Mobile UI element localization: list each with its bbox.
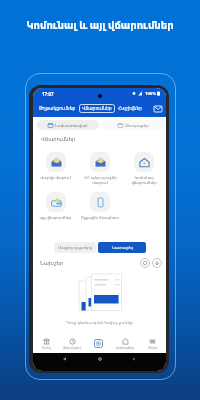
staticText: Ձևաթղթեր <box>125 123 149 128</box>
staticText: Հաշիվներ <box>118 106 143 111</box>
button[interactable]: Home <box>97 356 103 362</box>
staticText: Դուք դեռևս որևէ նախշ չունեք <box>66 320 133 326</box>
button[interactable]: ՀՀ պետ բյուջեի <box>78 152 122 185</box>
button[interactable]: Մենյու <box>139 334 166 353</box>
button[interactable]: Ձևաթղթեր <box>102 120 164 130</box>
button[interactable]: Թղթակցումներ <box>37 104 78 113</box>
staticText: Փոխանցում <box>63 346 82 349</box>
staticText: մարում <box>92 180 108 185</box>
staticText: Բջջային հեռախոս <box>81 215 119 220</box>
button[interactable]: Մաքրել դաշտերը <box>54 242 96 253</box>
staticText: այլ վճարումներ <box>39 215 72 220</box>
staticText: Կատարել <box>112 245 133 250</box>
button[interactable]: Վճարումներ <box>79 104 115 113</box>
button[interactable]: Փոխանցում <box>59 334 85 353</box>
button[interactable]: Messages <box>153 104 162 113</box>
button[interactable]: Download <box>152 258 162 268</box>
button[interactable]: Նախատեսված <box>37 120 99 130</box>
staticText: Վճարումներ <box>82 106 112 111</box>
staticText: Թղթակցումներ <box>39 106 76 111</box>
staticText: Մենյու <box>148 346 158 349</box>
button[interactable]: Back <box>131 356 137 362</box>
staticText: Մաքրել դաշտերը <box>58 245 92 250</box>
staticText: Վարկի մարում <box>40 175 71 180</box>
button[interactable]: Վարկի մարում <box>33 152 78 180</box>
staticText: ՀՀ պետ բյուջեի <box>84 175 117 180</box>
staticText: վճարումներ <box>131 180 157 185</box>
button[interactable]: Կոմունալ <box>122 152 166 185</box>
staticText: Նախշեր <box>40 260 64 266</box>
button[interactable]: Add <box>85 334 112 353</box>
button[interactable]: Հաշիվներ <box>116 104 145 113</box>
button[interactable]: Կատարել <box>98 242 146 253</box>
button[interactable]: Sort <box>140 258 150 268</box>
staticText: 100% <box>145 91 156 97</box>
staticText: Կոմունալ և այլ վճարումներ <box>26 18 174 32</box>
staticText: Կոմունալ <box>134 175 154 180</box>
staticText: Բանկ <box>42 346 51 349</box>
button[interactable]: Բջջային հեռախոս <box>78 192 122 220</box>
button[interactable]: Բանկ <box>33 334 59 353</box>
staticText: Վճարումներ <box>41 136 76 142</box>
staticText: Նախատեսված <box>55 123 88 128</box>
button[interactable]: Recents <box>62 356 68 362</box>
staticText: 17:07 <box>42 91 54 97</box>
button[interactable]: Խանութներ <box>112 334 139 353</box>
button[interactable]: այլ վճարումներ <box>33 192 78 220</box>
staticText: Խանութներ <box>116 346 135 349</box>
